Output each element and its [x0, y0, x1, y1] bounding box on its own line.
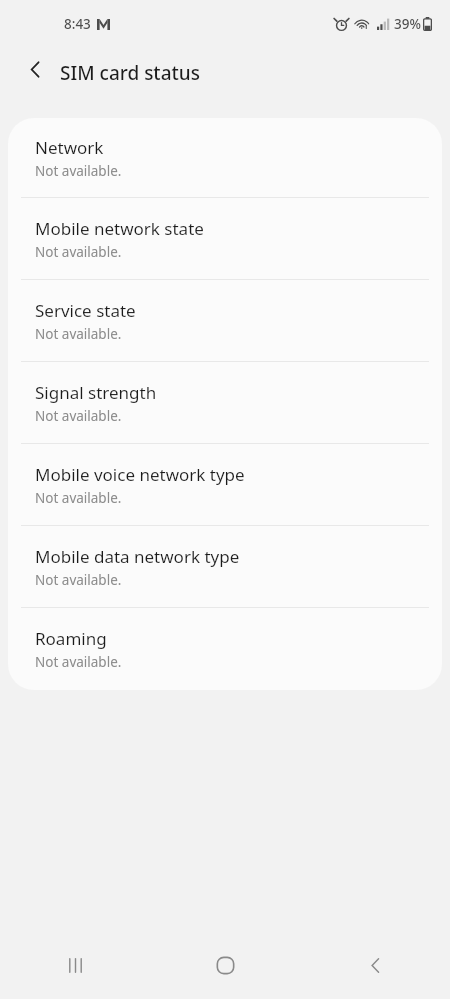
- staticText: 39%: [394, 15, 421, 33]
- staticText: Not available.: [35, 325, 122, 343]
- staticText: Roaming: [35, 627, 107, 650]
- staticText: Not available.: [35, 653, 122, 671]
- button[interactable]: Mobile network state: [8, 198, 442, 280]
- staticText: Not available.: [35, 489, 122, 507]
- staticText: Mobile network state: [35, 217, 204, 240]
- button[interactable]: Mobile voice network type: [8, 444, 442, 526]
- staticText: Mobile data network type: [35, 545, 240, 568]
- button[interactable]: Back: [13, 47, 57, 91]
- staticText: Not available.: [35, 407, 122, 425]
- staticText: Not available.: [35, 243, 122, 261]
- button[interactable]: Network: [8, 118, 442, 198]
- staticText: SIM card status: [60, 60, 200, 86]
- button[interactable]: Home: [150, 931, 300, 999]
- button[interactable]: Service state: [8, 280, 442, 362]
- button[interactable]: Back: [300, 931, 450, 999]
- button[interactable]: Roaming: [8, 608, 442, 690]
- button[interactable]: Signal strength: [8, 362, 442, 444]
- button[interactable]: Recents: [0, 931, 150, 999]
- staticText: Signal strength: [35, 381, 157, 404]
- staticText: Network: [35, 136, 104, 159]
- staticText: 8:43: [64, 15, 91, 33]
- staticText: Not available.: [35, 571, 122, 589]
- staticText: Not available.: [35, 162, 122, 180]
- staticText: Service state: [35, 299, 136, 322]
- button[interactable]: Mobile data network type: [8, 526, 442, 608]
- staticText: Mobile voice network type: [35, 463, 245, 486]
